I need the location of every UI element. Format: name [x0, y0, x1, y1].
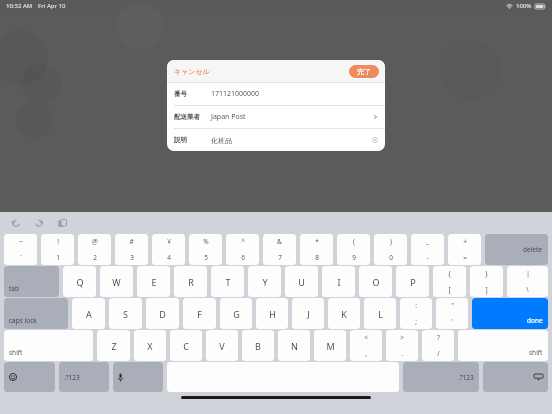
button[interactable]: *	[300, 234, 333, 265]
button[interactable]: Dictation	[113, 362, 163, 392]
button[interactable]: :	[400, 298, 432, 329]
button[interactable]: @	[78, 234, 111, 265]
button[interactable]: Q	[63, 266, 96, 297]
button[interactable]: V	[206, 330, 238, 361]
staticText: N	[291, 340, 298, 352]
staticText: _	[426, 237, 429, 246]
staticText: (	[353, 237, 355, 246]
button[interactable]: 番号	[167, 83, 385, 105]
button[interactable]: 完了	[349, 65, 379, 78]
button[interactable]: tab	[4, 266, 59, 297]
button[interactable]: 配送業者	[167, 106, 385, 128]
button[interactable]: ~	[4, 234, 37, 265]
button[interactable]: "	[436, 298, 468, 329]
staticText: G	[233, 308, 240, 320]
button[interactable]: {	[433, 266, 466, 297]
button[interactable]: X	[134, 330, 166, 361]
button[interactable]: N	[278, 330, 310, 361]
staticText: ¥	[167, 237, 171, 246]
staticText: 9	[352, 253, 356, 262]
button[interactable]: ¥	[152, 234, 185, 265]
button[interactable]: %	[189, 234, 222, 265]
button[interactable]: Z	[97, 330, 130, 361]
button[interactable]: P	[396, 266, 429, 297]
button[interactable]: )	[374, 234, 407, 265]
button[interactable]: !	[41, 234, 74, 265]
staticText: P	[410, 276, 416, 288]
staticText: )	[390, 237, 392, 246]
staticText: Z	[111, 340, 117, 352]
button[interactable]: C	[170, 330, 202, 361]
button[interactable]: .?123	[403, 362, 479, 392]
button[interactable]: Hide keyboard	[483, 362, 548, 392]
staticText: 配送業者	[174, 113, 200, 121]
button[interactable]: done	[472, 298, 548, 329]
staticText: @	[92, 237, 98, 246]
button[interactable]: H	[256, 298, 288, 329]
button[interactable]: +	[448, 234, 481, 265]
button[interactable]: W	[100, 266, 133, 297]
button[interactable]: Paste	[54, 215, 70, 231]
button[interactable]: Redo	[31, 215, 47, 231]
button[interactable]: 説明	[167, 129, 385, 151]
button[interactable]: >	[386, 330, 418, 361]
staticText: *	[315, 237, 319, 246]
staticText: Japan Post	[211, 112, 246, 122]
staticText: #	[129, 237, 134, 246]
staticText: J	[307, 308, 310, 320]
staticText: Y	[262, 276, 268, 288]
staticText: done	[527, 316, 543, 325]
button[interactable]: |	[507, 266, 548, 297]
button[interactable]: (	[337, 234, 370, 265]
button[interactable]: L	[364, 298, 396, 329]
staticText: .	[401, 349, 403, 358]
button[interactable]: キャンセル	[167, 64, 214, 79]
button[interactable]: shift	[458, 330, 548, 361]
button[interactable]: S	[109, 298, 142, 329]
button[interactable]: G	[220, 298, 252, 329]
button[interactable]: D	[146, 298, 179, 329]
staticText: 171121000000	[211, 89, 260, 99]
button[interactable]: delete	[485, 234, 548, 265]
button[interactable]: <	[350, 330, 382, 361]
staticText: ;	[415, 317, 417, 326]
button[interactable]: shift	[4, 330, 93, 361]
staticText: キャンセル	[174, 67, 210, 76]
staticText: +	[463, 237, 467, 246]
staticText: E	[151, 276, 157, 288]
staticText: delete	[523, 245, 543, 254]
button[interactable]: _	[411, 234, 444, 265]
button[interactable]: ?	[422, 330, 454, 361]
staticText: ?	[437, 333, 440, 342]
button[interactable]: ^	[226, 234, 259, 265]
staticText: M	[326, 340, 335, 352]
button[interactable]: J	[292, 298, 324, 329]
button[interactable]: }	[470, 266, 503, 297]
staticText: 7	[278, 253, 282, 262]
button[interactable]: Undo	[8, 215, 24, 231]
button[interactable]: T	[211, 266, 244, 297]
staticText: T	[225, 276, 231, 288]
button[interactable]: R	[174, 266, 207, 297]
button[interactable]: F	[183, 298, 216, 329]
button[interactable]: E	[137, 266, 170, 297]
button[interactable]: Emoji	[4, 362, 55, 392]
staticText: V	[219, 340, 225, 352]
button[interactable]: M	[314, 330, 346, 361]
button[interactable]: A	[72, 298, 105, 329]
button[interactable]: K	[328, 298, 360, 329]
button[interactable]: caps lock	[4, 298, 68, 329]
button[interactable]: B	[242, 330, 274, 361]
button[interactable]: I	[322, 266, 355, 297]
staticText: 2	[93, 253, 97, 262]
button[interactable]: &	[263, 234, 296, 265]
button[interactable]: .?123	[59, 362, 109, 392]
button[interactable]: U	[285, 266, 318, 297]
staticText: D	[159, 308, 166, 320]
staticText: 10:52 AM	[6, 2, 33, 10]
button[interactable]: #	[115, 234, 148, 265]
button[interactable]: O	[359, 266, 392, 297]
button[interactable]: Y	[248, 266, 281, 297]
staticText: 0	[389, 253, 393, 262]
